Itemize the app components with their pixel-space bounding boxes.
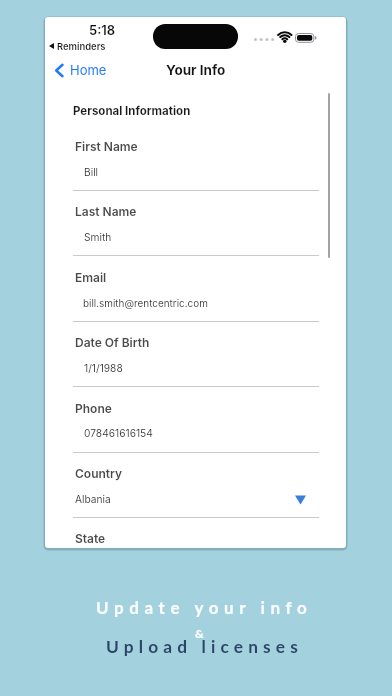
staticText: First Name [75, 139, 138, 154]
staticText: bill.smith@rentcentric.com [83, 297, 208, 309]
button[interactable] [73, 135, 319, 191]
button[interactable] [73, 266, 319, 322]
staticText: Update your info [96, 597, 313, 617]
staticText: Smith [84, 231, 112, 243]
staticText: State [75, 531, 106, 546]
staticText: & [195, 626, 204, 640]
staticText: Home [70, 62, 107, 78]
button[interactable]: Home [50, 58, 120, 82]
staticText: Reminders [57, 41, 106, 52]
button[interactable] [73, 200, 319, 256]
button[interactable] [73, 397, 319, 453]
staticText: Personal Information [73, 104, 191, 118]
staticText: Country [75, 466, 123, 481]
staticText: Date Of Birth [75, 335, 150, 350]
staticText: Bill [84, 166, 99, 178]
staticText: Last Name [75, 204, 137, 219]
staticText: Email [75, 270, 107, 285]
staticText: 078461616154 [84, 427, 153, 439]
staticText: Upload licenses [106, 636, 303, 657]
button[interactable] [288, 488, 312, 510]
button[interactable] [73, 331, 319, 387]
staticText: 1/1/1988 [84, 362, 123, 374]
button[interactable] [73, 462, 319, 518]
staticText: Phone [75, 401, 112, 416]
staticText: Albania [75, 493, 111, 505]
staticText: 5:18 [89, 22, 116, 38]
staticText: Your Info [166, 62, 226, 78]
